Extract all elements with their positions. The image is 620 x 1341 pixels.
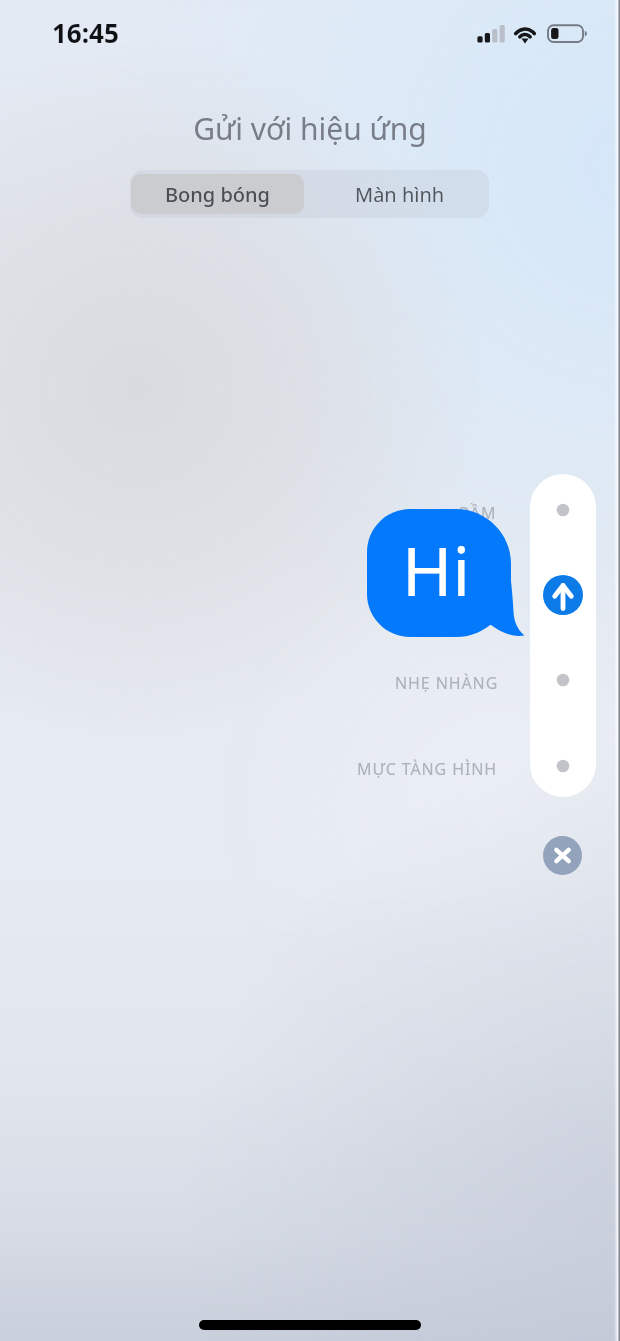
staticText: 16:45: [52, 15, 119, 50]
button[interactable]: Close: [543, 836, 582, 875]
button[interactable]: Màn hình: [310, 170, 489, 218]
button[interactable]: NHẸ NHÀNG: [395, 672, 499, 694]
button[interactable]: Send: [543, 575, 583, 615]
staticText: Gửi với hiệu ứng: [0, 108, 620, 149]
button[interactable]: MỰC TÀNG HÌNH: [357, 758, 498, 780]
staticText: Bong bóng: [165, 181, 270, 208]
button[interactable]: Hi: [367, 509, 527, 639]
staticText: Hi: [402, 523, 470, 616]
staticText: Màn hình: [355, 181, 445, 208]
button[interactable]: RẦM: [459, 502, 497, 524]
button[interactable]: Bong bóng: [131, 174, 304, 214]
